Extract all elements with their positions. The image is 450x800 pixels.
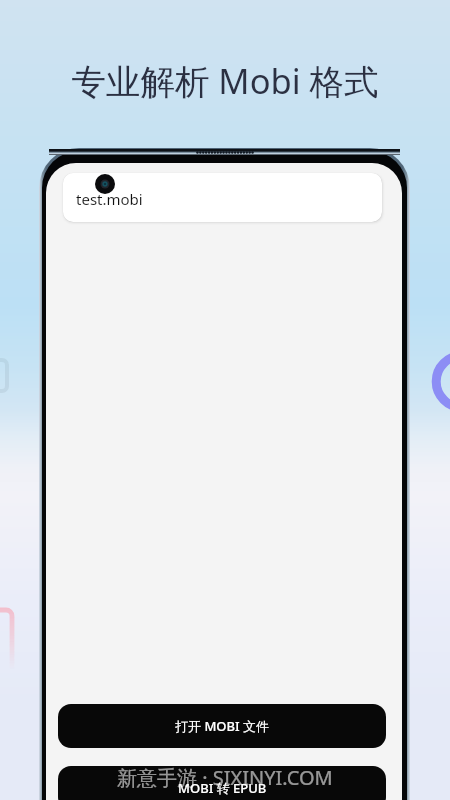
staticText: test.mobi — [76, 189, 143, 209]
button[interactable]: 打开 MOBI 文件 — [58, 704, 386, 748]
staticText: 打开 MOBI 文件 — [175, 717, 269, 735]
button[interactable]: MOBI 转 EPUB — [58, 766, 386, 800]
other: Camera — [95, 174, 115, 194]
staticText: MOBI 转 EPUB — [178, 779, 267, 797]
button[interactable]: test.mobi — [63, 173, 382, 222]
staticText: 专业解析 Mobi 格式 — [0, 57, 450, 104]
staticText: 新意手游 · SIXINYI.COM — [117, 764, 333, 791]
